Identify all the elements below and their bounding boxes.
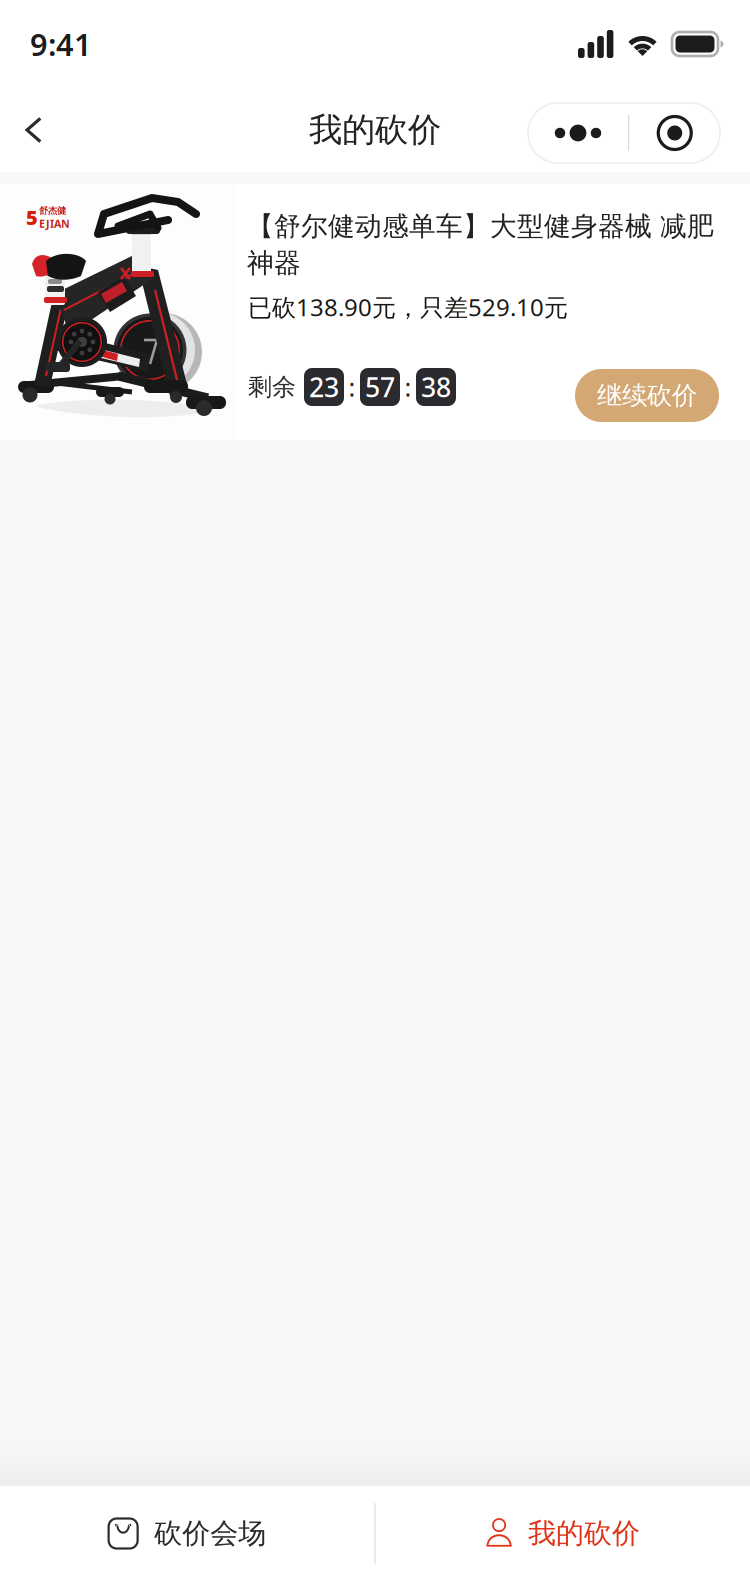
staticText: 神器 <box>247 247 301 280</box>
staticText: EJIAN <box>39 216 70 231</box>
staticText: 9:41 <box>30 24 92 64</box>
staticText: 5 <box>26 204 38 231</box>
staticText: 57 <box>365 369 395 405</box>
button[interactable]: Close mini program <box>629 103 720 163</box>
staticText: 砍价会场 <box>154 1516 266 1551</box>
button[interactable]: More options <box>528 103 628 163</box>
staticText: 继续砍价 <box>597 380 697 411</box>
button[interactable]: 我的砍价 <box>376 1486 750 1581</box>
staticText: 我的砍价 <box>528 1516 640 1551</box>
staticText: 【舒尔健动感单车】大型健身器械 减肥 <box>247 210 714 243</box>
staticText: 23 <box>309 369 339 405</box>
staticText: 剩余 <box>248 372 296 402</box>
staticText: 38 <box>421 369 451 405</box>
staticText: : <box>404 370 411 404</box>
staticText: 已砍138.90元，只差529.10元 <box>248 291 568 323</box>
staticText: 我的砍价 <box>309 109 441 150</box>
staticText: : <box>348 370 355 404</box>
button[interactable]: Back <box>0 98 64 162</box>
button[interactable]: 继续砍价 <box>575 369 719 422</box>
button[interactable]: 砍价会场 <box>0 1486 374 1581</box>
staticText: 舒杰健 <box>39 205 66 216</box>
